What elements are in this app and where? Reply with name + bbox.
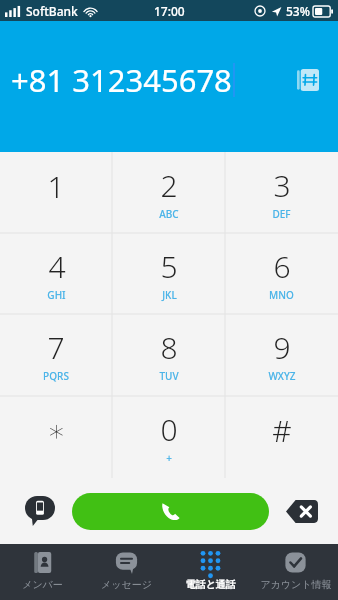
staticText: #	[272, 410, 292, 451]
button[interactable]: #	[225, 396, 338, 478]
staticText: +	[166, 451, 172, 465]
staticText: 8	[160, 327, 178, 368]
staticText: 2	[160, 165, 178, 206]
button[interactable]: 6	[225, 233, 338, 314]
button[interactable]: 8	[112, 314, 225, 396]
staticText: 53%	[286, 3, 310, 19]
button[interactable]: 3	[225, 152, 338, 233]
staticText: GHI	[47, 288, 66, 302]
staticText: PQRS	[43, 369, 69, 383]
staticText: WXYZ	[268, 369, 296, 383]
staticText: +81 312345678	[11, 59, 232, 101]
staticText: 1	[47, 166, 65, 207]
staticText: DEF	[272, 207, 291, 221]
button[interactable]: 9	[225, 314, 338, 396]
button[interactable]: メッセージ	[84, 544, 168, 600]
staticText: JKL	[162, 288, 177, 302]
button[interactable]: 2	[112, 152, 225, 233]
button[interactable]: メンバー	[0, 544, 84, 600]
button[interactable]: Contacts	[293, 65, 323, 95]
staticText: 6	[273, 246, 291, 287]
button[interactable]: 4	[0, 233, 112, 314]
button[interactable]: 5	[112, 233, 225, 314]
staticText: 9	[273, 327, 291, 368]
button[interactable]: 1	[0, 152, 112, 233]
button[interactable]: Delete	[280, 489, 324, 533]
staticText: 0	[160, 409, 178, 450]
staticText: メッセージ	[101, 578, 152, 591]
button[interactable]: アカウント情報	[253, 544, 338, 600]
staticText: 5	[160, 246, 178, 287]
button[interactable]: Voice call options	[18, 489, 62, 533]
staticText: 3	[273, 165, 291, 206]
button[interactable]: 0	[112, 396, 225, 478]
staticText: 7	[47, 327, 65, 368]
staticText: 4	[48, 246, 66, 287]
button[interactable]: ∗	[0, 396, 112, 478]
staticText: 電話と通話	[185, 578, 236, 591]
staticText: ∗	[47, 413, 66, 448]
staticText: MNO	[269, 288, 294, 302]
staticText: 17:00	[154, 3, 185, 19]
staticText: TUV	[159, 369, 179, 383]
staticText: アカウント情報	[260, 578, 332, 591]
button[interactable]: 7	[0, 314, 112, 396]
staticText: メンバー	[22, 578, 63, 591]
button[interactable]: 電話と通話	[168, 544, 253, 600]
staticText: ABC	[159, 207, 179, 221]
button[interactable]: Call	[72, 493, 269, 530]
staticText: SoftBank	[26, 3, 78, 19]
